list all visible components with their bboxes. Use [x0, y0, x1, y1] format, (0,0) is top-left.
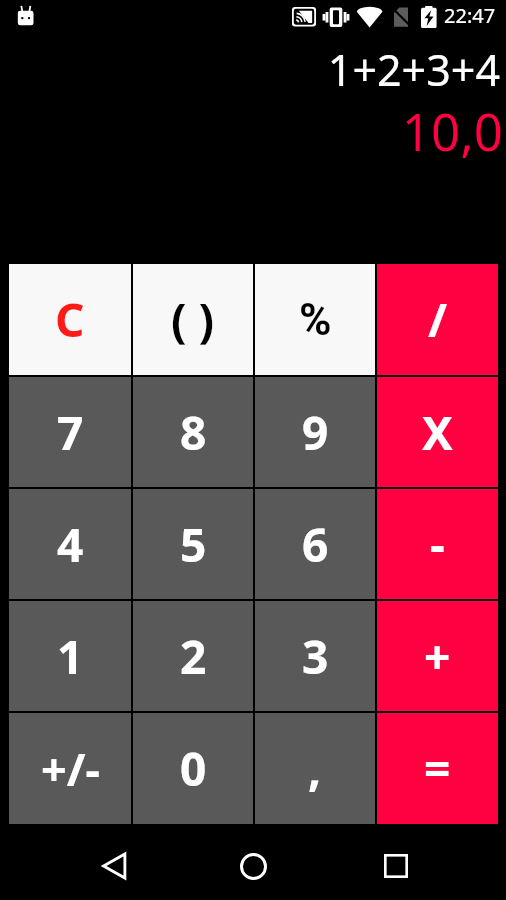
staticText: / — [428, 288, 448, 351]
staticText: 22:47 — [444, 2, 496, 29]
staticText: C — [55, 288, 85, 351]
button[interactable]: Home — [220, 833, 286, 899]
staticText: 1 — [57, 625, 84, 688]
staticText: 2 — [180, 625, 207, 688]
staticText: 1+2+3+4 — [327, 40, 500, 99]
staticText: 9 — [302, 401, 329, 464]
staticText: , — [308, 737, 322, 800]
staticText: +/- — [41, 738, 100, 799]
button[interactable]: = — [377, 713, 498, 824]
button[interactable]: 0 — [133, 713, 253, 824]
staticText: + — [424, 625, 451, 688]
button[interactable]: 1 — [9, 601, 131, 711]
button[interactable]: - — [377, 489, 498, 599]
button[interactable]: 9 — [255, 377, 375, 487]
staticText: 10,0 — [401, 96, 503, 165]
button[interactable]: 2 — [133, 601, 253, 711]
button[interactable]: % — [255, 264, 375, 375]
button[interactable]: C — [9, 264, 131, 375]
staticText: 6 — [302, 513, 329, 576]
button[interactable]: ( ) — [133, 264, 253, 375]
button[interactable]: +/- — [9, 713, 131, 824]
button[interactable]: , — [255, 713, 375, 824]
staticText: = — [424, 737, 451, 800]
button[interactable]: 4 — [9, 489, 131, 599]
button[interactable]: X — [377, 377, 498, 487]
button[interactable]: 3 — [255, 601, 375, 711]
staticText: % — [299, 294, 332, 346]
staticText: 7 — [57, 401, 84, 464]
staticText: - — [430, 513, 445, 576]
staticText: 8 — [180, 401, 207, 464]
staticText: ( ) — [171, 288, 215, 351]
button[interactable]: / — [377, 264, 498, 375]
button[interactable]: 8 — [133, 377, 253, 487]
button[interactable]: 5 — [133, 489, 253, 599]
button[interactable]: Back — [77, 833, 143, 899]
button[interactable]: 7 — [9, 377, 131, 487]
staticText: X — [422, 401, 453, 464]
staticText: 5 — [180, 513, 207, 576]
button[interactable]: 6 — [255, 489, 375, 599]
staticText: 4 — [57, 513, 84, 576]
button[interactable]: Recent apps — [363, 833, 429, 899]
staticText: 0 — [180, 737, 207, 800]
button[interactable]: + — [377, 601, 498, 711]
staticText: 3 — [302, 625, 329, 688]
